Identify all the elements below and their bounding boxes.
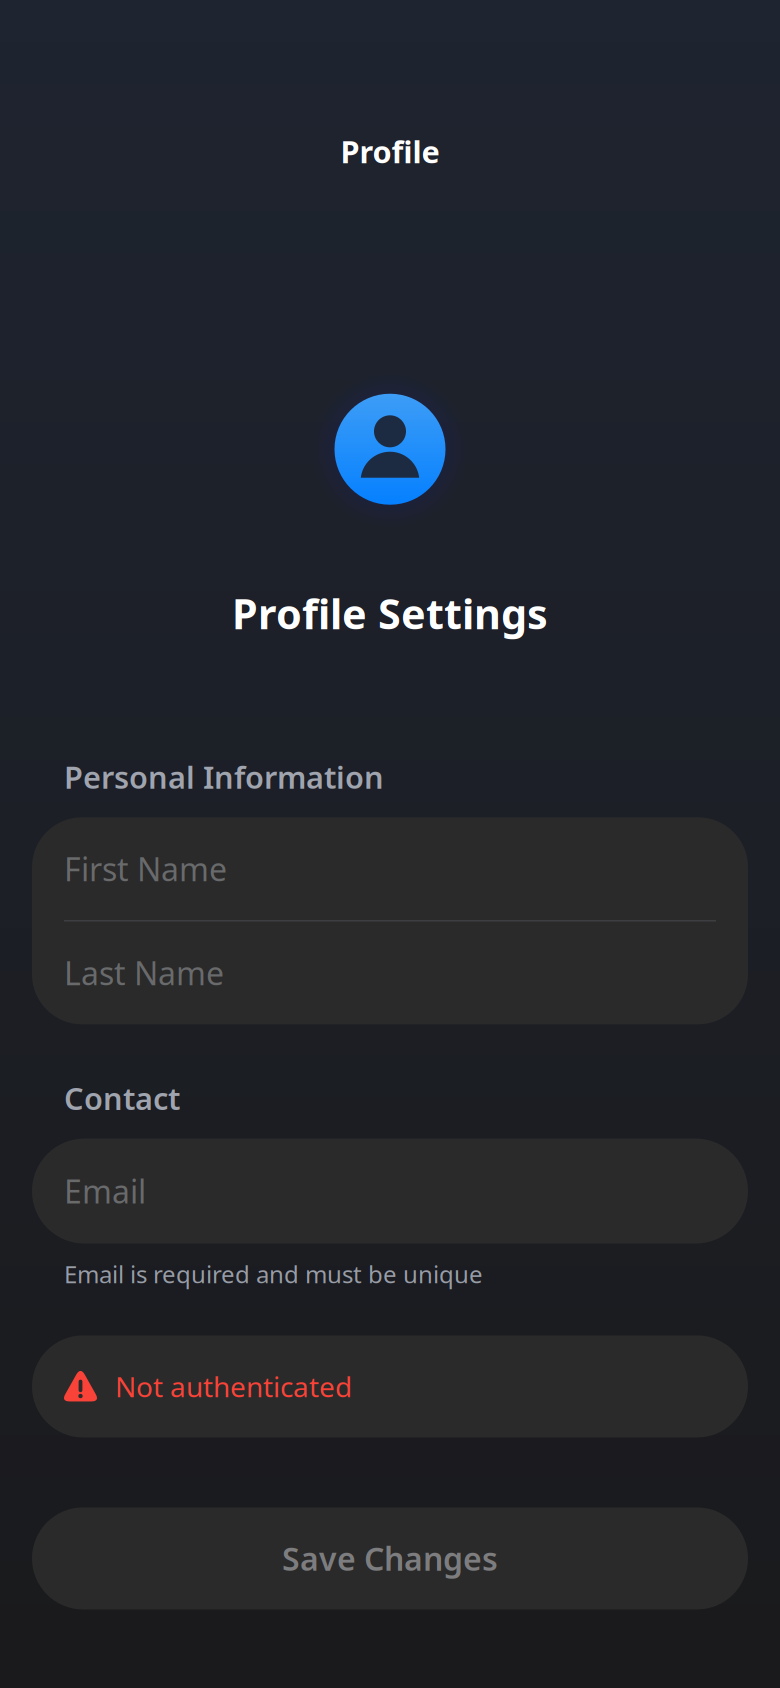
button[interactable]: Email bbox=[32, 1139, 748, 1244]
button[interactable]: First Name bbox=[32, 817, 748, 920]
staticText: Profile Settings bbox=[232, 586, 548, 641]
staticText: Personal Information bbox=[64, 757, 384, 797]
staticText: First Name bbox=[64, 848, 227, 890]
staticText: Email is required and must be unique bbox=[64, 1258, 483, 1290]
button[interactable]: Last Name bbox=[32, 921, 748, 1024]
staticText: Not authenticated bbox=[115, 1368, 352, 1405]
staticText: Profile bbox=[340, 131, 439, 172]
button[interactable]: Save Changes bbox=[0, 1507, 780, 1609]
staticText: Contact bbox=[64, 1078, 180, 1118]
staticText: Last Name bbox=[64, 952, 224, 994]
staticText: Email bbox=[64, 1170, 146, 1212]
staticText: Save Changes bbox=[282, 1537, 498, 1580]
